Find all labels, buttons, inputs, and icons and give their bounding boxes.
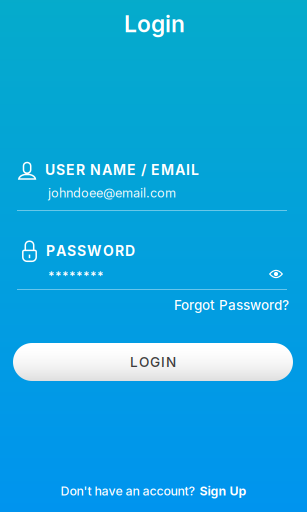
staticText: P A S S W O R D	[46, 242, 135, 259]
staticText: ********	[48, 269, 104, 283]
staticText: Forgot Password?	[174, 297, 289, 313]
staticText: U S E R N A M E / E M A I L	[45, 161, 199, 178]
staticText: Login	[124, 10, 185, 38]
button[interactable]: Show password	[262, 262, 290, 286]
staticText: johndoee@email.com	[48, 185, 176, 201]
button[interactable]: Don't have an account?	[0, 482, 307, 500]
staticText: Don't have an account?	[60, 483, 195, 498]
staticText: Sign Up	[199, 483, 246, 498]
staticText: L O G I N	[130, 354, 176, 370]
button[interactable]: Forgot Password?	[165, 296, 289, 314]
button[interactable]: L O G I N	[13, 343, 293, 381]
